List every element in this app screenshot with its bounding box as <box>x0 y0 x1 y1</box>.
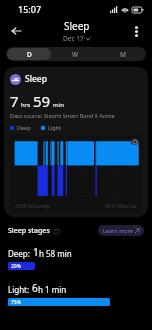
button[interactable]: Sleep quality <box>131 138 138 145</box>
button[interactable]: D <box>7 48 51 60</box>
button[interactable]: Dec 17 <box>63 34 90 43</box>
staticText: Deep <box>17 124 31 131</box>
staticText: 20% <box>11 263 21 270</box>
staticText: D <box>27 50 32 59</box>
button[interactable]: Info <box>53 228 60 235</box>
staticText: Sleep stages <box>8 226 50 236</box>
button[interactable]: More options <box>126 21 146 41</box>
staticText: Data source: Xiaomi Smart Band 9 Active <box>10 112 115 119</box>
staticText: 23:08 Fell asleep <box>15 203 50 209</box>
staticText: 09:37 Woke up <box>105 203 137 209</box>
staticText: h 1 min <box>38 284 67 295</box>
staticText: h 58 min <box>39 248 72 259</box>
button[interactable]: Learn more <box>98 225 144 236</box>
staticText: Learn more <box>103 227 133 234</box>
button[interactable]: W <box>53 48 98 60</box>
staticText: Sleep <box>25 73 47 85</box>
staticText: hrs <box>21 101 31 109</box>
button[interactable]: Back <box>6 21 26 41</box>
staticText: 6 <box>32 281 38 295</box>
staticText: W <box>72 50 79 59</box>
staticText: min <box>53 101 64 109</box>
staticText: Light <box>48 124 62 131</box>
button[interactable]: M <box>100 48 145 60</box>
staticText: 15:07 <box>18 3 42 15</box>
staticText: 1 <box>33 245 39 259</box>
staticText: Light: <box>8 284 32 295</box>
staticText: Sleep <box>64 19 90 33</box>
staticText: 7 <box>10 91 19 111</box>
button[interactable]: Sleep <box>4 67 148 217</box>
staticText: 75% <box>11 299 21 306</box>
staticText: Deep: <box>8 248 33 259</box>
staticText: M <box>120 50 126 59</box>
staticText: 59 <box>33 91 51 111</box>
staticText: Dec 17 <box>63 34 84 43</box>
